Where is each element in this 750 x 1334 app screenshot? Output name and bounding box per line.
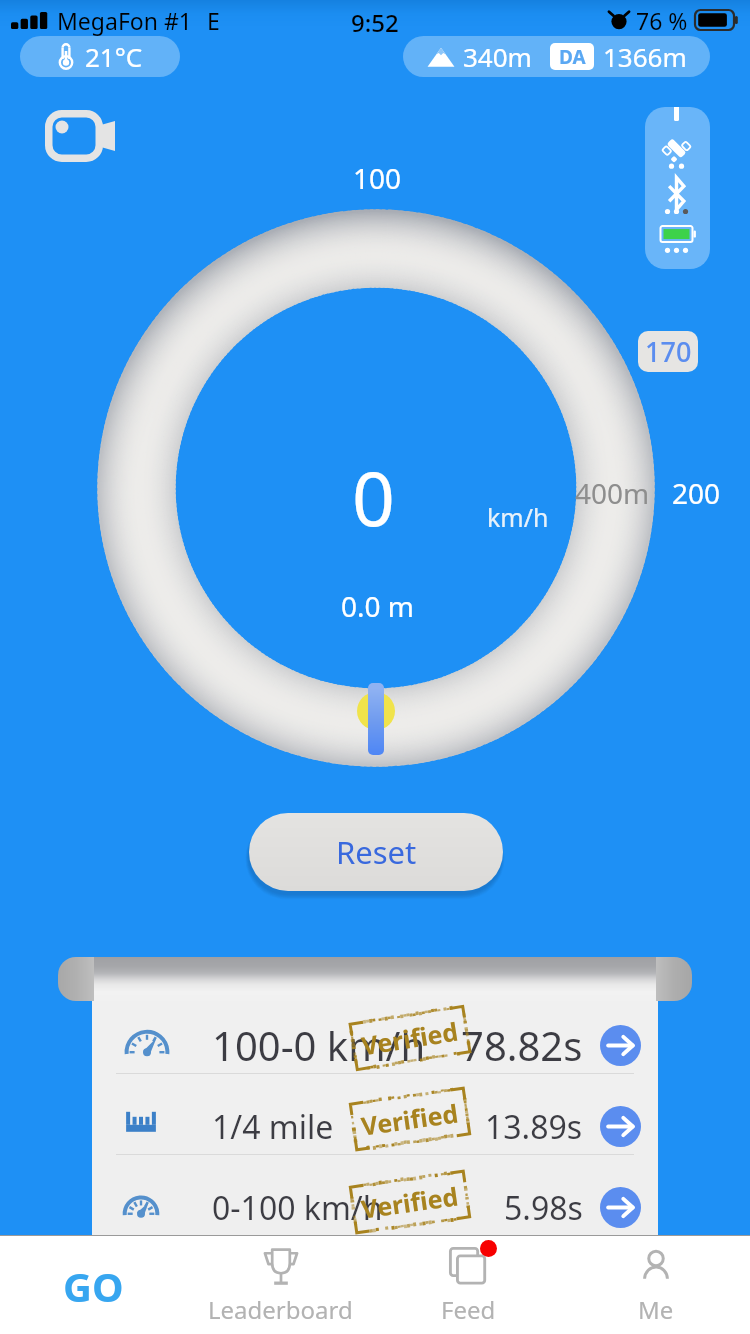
button[interactable]: 21°C — [20, 36, 180, 77]
staticText: 1366m — [603, 39, 687, 74]
button[interactable]: Sensors status — [645, 107, 710, 269]
staticText: km/h — [487, 500, 549, 534]
button[interactable]: Me — [562, 1236, 750, 1334]
staticText: 0 — [352, 446, 395, 548]
button[interactable]: Details — [600, 1025, 641, 1066]
button[interactable]: 100-0 km/h — [92, 1007, 658, 1083]
staticText: 13.89s — [485, 1105, 583, 1149]
staticText: E — [207, 5, 220, 36]
button[interactable]: 170 — [638, 331, 698, 372]
staticText: 400m — [575, 474, 650, 512]
staticText: Reset — [336, 831, 417, 873]
button[interactable]: Details — [600, 1106, 641, 1147]
staticText: 9:52 — [351, 6, 399, 39]
staticText: 76 % — [636, 5, 688, 36]
button[interactable]: Feed — [374, 1236, 562, 1334]
staticText: DA — [559, 44, 586, 70]
staticText: 0.0 m — [341, 587, 414, 625]
button[interactable]: GO — [0, 1236, 187, 1334]
staticText: Verified — [359, 1013, 461, 1062]
staticText: 21°C — [85, 39, 143, 74]
button[interactable]: 0-100 km/h — [92, 1172, 658, 1243]
button[interactable]: 1/4 mile — [92, 1091, 658, 1162]
staticText: Me — [638, 1293, 674, 1326]
staticText: 170 — [645, 333, 692, 370]
staticText: 78.82s — [461, 1018, 583, 1072]
staticText: MegaFon #1 — [57, 5, 192, 36]
button[interactable]: Reset — [249, 813, 503, 891]
staticText: 5.98s — [504, 1186, 583, 1230]
staticText: Leaderboard — [208, 1293, 353, 1326]
button[interactable]: Leaderboard — [187, 1236, 374, 1334]
staticText: 100-0 km/h — [212, 1018, 426, 1072]
staticText: 1/4 mile — [212, 1105, 334, 1149]
staticText: 100 — [353, 159, 402, 197]
staticText: 0-100 km/h — [212, 1186, 383, 1230]
button[interactable]: 340m — [403, 36, 710, 77]
button[interactable]: Record video — [45, 110, 115, 162]
staticText: GO — [63, 1259, 124, 1313]
button[interactable]: Details — [600, 1187, 641, 1228]
staticText: 340m — [463, 39, 532, 74]
staticText: 200 — [672, 474, 721, 512]
staticText: Feed — [441, 1293, 496, 1326]
staticText: Verified — [359, 1178, 461, 1226]
staticText: Verified — [359, 1095, 461, 1143]
